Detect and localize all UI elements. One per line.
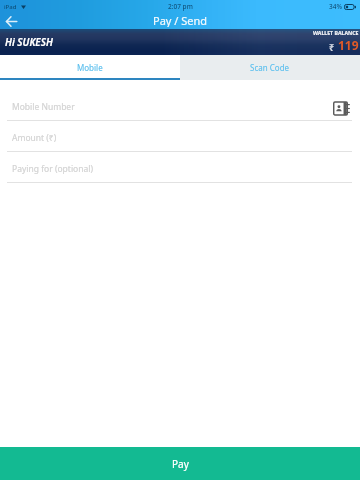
button[interactable]: Back (0, 13, 22, 29)
button[interactable]: Pay (0, 447, 360, 480)
staticText: Hi SUKESH (5, 35, 53, 49)
button[interactable]: Scan Code (180, 55, 360, 80)
staticText: Pay / Send (153, 13, 208, 27)
staticText: Mobile Number (12, 101, 75, 113)
staticText: 119 (338, 37, 359, 53)
staticText: Pay (172, 457, 189, 471)
button[interactable]: Choose contact (330, 101, 352, 116)
button[interactable]: Amount (₹) (0, 121, 360, 152)
staticText: WALLET BALANCE (313, 29, 359, 36)
staticText: Scan Code (250, 62, 290, 73)
staticText: 34% (329, 2, 342, 11)
staticText: Paying for (optional) (12, 163, 94, 175)
staticText: Mobile (77, 62, 103, 73)
button[interactable]: Mobile (0, 55, 180, 80)
button[interactable]: Paying for (optional) (0, 152, 360, 183)
button[interactable]: Mobile Number (0, 90, 360, 121)
staticText: ₹ (329, 41, 335, 53)
staticText: iPad (4, 3, 17, 11)
staticText: 2:07 pm (168, 2, 193, 11)
staticText: Amount (₹) (12, 132, 57, 144)
